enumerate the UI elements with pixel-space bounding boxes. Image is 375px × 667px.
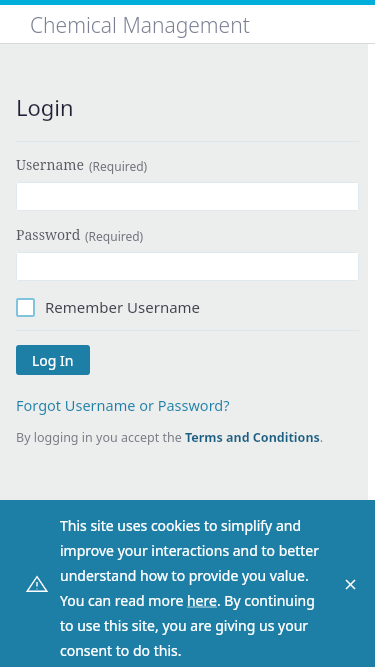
button[interactable] [16, 182, 359, 211]
staticText: This site uses cookies to simplify and i… [60, 516, 328, 660]
button[interactable]: Remember Username [16, 297, 201, 317]
staticText: (Required) [89, 158, 148, 174]
other: Warning [24, 571, 50, 597]
button[interactable]: By logging in you accept the Terms and C… [16, 429, 324, 446]
staticText: Login [16, 92, 74, 122]
staticText: Chemical Management [30, 11, 250, 40]
staticText: Remember Username [45, 297, 201, 317]
staticText: Username [16, 155, 85, 174]
staticText: Password [16, 225, 81, 244]
staticText: By logging in you accept the Terms and C… [16, 429, 324, 446]
button[interactable]: Close [338, 572, 362, 596]
staticText: (Required) [85, 228, 144, 244]
button[interactable]: Log In [16, 345, 90, 375]
staticText: Forgot Username or Password? [16, 395, 230, 415]
button[interactable]: Forgot Username or Password? [16, 395, 230, 415]
button[interactable] [16, 252, 359, 281]
staticText: Log In [32, 351, 74, 370]
